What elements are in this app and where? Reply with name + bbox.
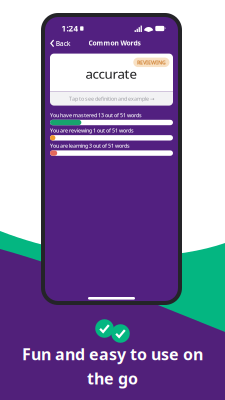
staticText: the go	[87, 368, 138, 389]
button[interactable]: Back	[46, 37, 77, 50]
staticText: REVIEWING	[137, 59, 166, 66]
staticText: Tap to see definition and example →	[69, 95, 154, 102]
button[interactable]: accurate	[50, 54, 173, 106]
staticText: You are reviewing 1 out of 51 words	[50, 127, 134, 134]
staticText: accurate	[85, 65, 137, 82]
staticText: You are learning 3 out of 51 words	[50, 142, 130, 149]
staticText: Common Words	[88, 38, 140, 47]
staticText: 1:24	[61, 23, 78, 34]
staticText: You have mastered 13 out of 51 words	[50, 112, 142, 119]
staticText: Fun and easy to use on	[22, 343, 203, 365]
staticText: Back	[56, 39, 71, 48]
